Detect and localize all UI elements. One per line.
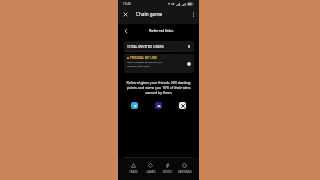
button[interactable]: Copy link xyxy=(187,62,191,66)
staticText: GAMES xyxy=(146,170,156,174)
staticText: Chain game xyxy=(136,11,163,17)
staticText: 17:45 xyxy=(123,2,131,6)
button[interactable]: Share on Telegram xyxy=(131,102,138,109)
staticText: Referral gives your friends 200 starting… xyxy=(124,80,193,95)
button[interactable]: Back xyxy=(122,27,130,35)
staticText: TOTAL INVITED USERS xyxy=(127,44,164,49)
button[interactable]: More options xyxy=(188,9,198,19)
staticText: REFERRALS xyxy=(178,170,192,174)
button[interactable]: TOTAL INVITED USERS xyxy=(124,41,194,52)
staticText: https://chainbet.site/bet_link_inv ref=u… xyxy=(127,61,163,68)
staticText: TRADE xyxy=(129,170,138,174)
button[interactable]: Close xyxy=(120,9,130,19)
button[interactable]: PERSONAL BET LINK xyxy=(124,54,194,73)
button[interactable]: Share on Discord xyxy=(155,102,162,109)
staticText: Referral links xyxy=(149,28,174,33)
button[interactable]: BOOST xyxy=(159,163,176,174)
staticText: 0 xyxy=(188,44,191,49)
button[interactable]: REFERRALS xyxy=(176,163,193,174)
button[interactable]: Share on X xyxy=(179,102,186,109)
staticText: PERSONAL BET LINK xyxy=(130,56,157,60)
staticText: BOOST xyxy=(163,170,172,174)
button[interactable]: GAMES xyxy=(142,163,159,174)
button[interactable]: TRADE xyxy=(124,163,142,174)
